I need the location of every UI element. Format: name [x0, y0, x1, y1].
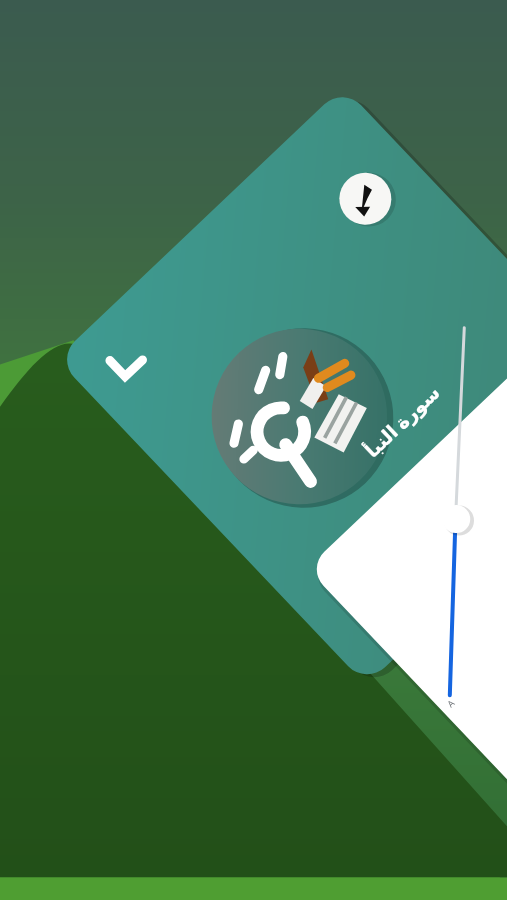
button[interactable]: Album art, Surah An-Naba	[266, 264, 384, 382]
button[interactable]: Shuffle	[420, 214, 472, 266]
button[interactable]: Repeat	[332, 532, 368, 568]
button[interactable]: Pause	[412, 400, 466, 454]
button[interactable]: Next track	[470, 352, 507, 392]
